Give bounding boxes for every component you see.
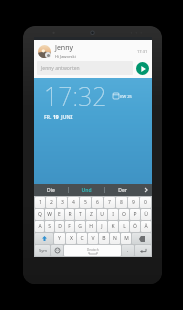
- staticText: C: [80, 235, 84, 242]
- staticText: E: [58, 211, 61, 218]
- staticText: 6: [96, 199, 99, 206]
- staticText: F: [68, 223, 71, 230]
- button[interactable]: K: [108, 221, 118, 232]
- button[interactable]: 9: [128, 197, 139, 208]
- staticText: 3: [61, 199, 64, 206]
- button[interactable]: 8: [116, 197, 127, 208]
- staticText: M: [124, 235, 129, 242]
- staticText: D: [58, 223, 62, 230]
- button[interactable]: E: [55, 209, 64, 220]
- staticText: P: [133, 211, 137, 218]
- staticText: S: [48, 223, 51, 230]
- staticText: Und: [81, 187, 92, 194]
- staticText: 8: [120, 199, 123, 206]
- staticText: 19: [53, 114, 61, 121]
- staticText: 4: [72, 199, 75, 206]
- button[interactable]: W: [45, 209, 54, 220]
- button[interactable]: U: [97, 209, 107, 220]
- staticText: X: [70, 235, 73, 242]
- staticText: W: [47, 211, 52, 218]
- button[interactable]: 2: [46, 197, 56, 208]
- button[interactable]: Die: [34, 184, 68, 196]
- button[interactable]: Z: [86, 209, 96, 220]
- staticText: R: [68, 211, 72, 218]
- button[interactable]: 1: [35, 197, 45, 208]
- staticText: Ä: [144, 223, 148, 230]
- staticText: 5: [84, 199, 87, 206]
- staticText: Jenny: [55, 43, 74, 53]
- button[interactable]: M: [121, 233, 131, 244]
- button[interactable]: A: [35, 221, 44, 232]
- staticText: 1: [39, 199, 42, 206]
- button[interactable]: H: [86, 221, 96, 232]
- button[interactable]: Ä: [141, 221, 151, 232]
- button[interactable]: C: [77, 233, 87, 244]
- staticText: J: [101, 223, 103, 230]
- button[interactable]: I: [108, 209, 118, 220]
- button[interactable]: D: [55, 221, 64, 232]
- staticText: Deutsch: [87, 248, 99, 252]
- button[interactable]: Ö: [130, 221, 140, 232]
- button[interactable]: Emoji: [51, 245, 63, 256]
- button[interactable]: Space: [64, 245, 121, 256]
- button[interactable]: Q: [35, 209, 44, 220]
- button[interactable]: G: [75, 221, 85, 232]
- button[interactable]: B: [99, 233, 109, 244]
- staticText: L: [123, 223, 126, 230]
- button[interactable]: Ü: [141, 209, 151, 220]
- button[interactable]: L: [119, 221, 129, 232]
- button[interactable]: Period: [122, 245, 134, 256]
- staticText: V: [91, 235, 95, 242]
- button[interactable]: X: [66, 233, 76, 244]
- staticText: Ö: [133, 223, 137, 230]
- button[interactable]: 3: [57, 197, 67, 208]
- staticText: KW 25: [120, 94, 132, 99]
- staticText: O: [122, 211, 126, 218]
- button[interactable]: O: [119, 209, 129, 220]
- staticText: H: [89, 223, 93, 230]
- button[interactable]: Symbols: [35, 245, 50, 256]
- button[interactable]: Der: [105, 184, 140, 196]
- button[interactable]: Send reply: [136, 62, 149, 75]
- staticText: K: [111, 223, 115, 230]
- button[interactable]: P: [130, 209, 140, 220]
- button[interactable]: 0: [140, 197, 151, 208]
- button[interactable]: 4: [68, 197, 79, 208]
- button[interactable]: Y: [54, 233, 65, 244]
- staticText: Y: [58, 235, 61, 242]
- staticText: I: [112, 211, 114, 218]
- button[interactable]: Jenny: [34, 40, 152, 78]
- button[interactable]: T: [75, 209, 85, 220]
- staticText: Hi Jaworski: [55, 54, 76, 59]
- staticText: FR.: [44, 114, 53, 121]
- button[interactable]: Shift: [35, 233, 53, 244]
- button[interactable]: J: [97, 221, 107, 232]
- staticText: G: [78, 223, 82, 230]
- button[interactable]: V: [88, 233, 98, 244]
- button[interactable]: F: [65, 221, 74, 232]
- staticText: .: [127, 247, 129, 254]
- button[interactable]: Enter: [135, 245, 151, 256]
- button[interactable]: More suggestions: [140, 184, 152, 196]
- staticText: JUNI: [61, 114, 73, 121]
- button[interactable]: Jenny antworten: [37, 61, 133, 75]
- button[interactable]: N: [110, 233, 120, 244]
- staticText: 17:32: [44, 79, 107, 113]
- staticText: 9: [132, 199, 135, 206]
- button[interactable]: 7: [104, 197, 115, 208]
- button[interactable]: R: [65, 209, 74, 220]
- button[interactable]: Backspace: [132, 233, 151, 244]
- staticText: T: [79, 211, 82, 218]
- staticText: B: [102, 235, 106, 242]
- staticText: Q: [38, 211, 42, 218]
- staticText: Sym: [39, 248, 47, 253]
- staticText: 0: [144, 199, 147, 206]
- button[interactable]: Und: [69, 184, 104, 196]
- staticText: Z: [90, 211, 93, 218]
- staticText: U: [100, 211, 104, 218]
- staticText: Die: [47, 187, 55, 194]
- button[interactable]: S: [45, 221, 54, 232]
- button[interactable]: 6: [92, 197, 103, 208]
- staticText: Ü: [144, 211, 148, 218]
- button[interactable]: 5: [80, 197, 91, 208]
